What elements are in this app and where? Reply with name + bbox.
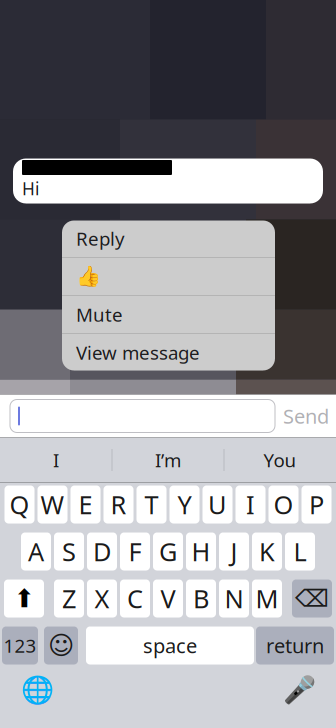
button[interactable]: J [219,532,249,570]
button[interactable]: L [285,532,315,570]
staticText: V [160,582,175,615]
button[interactable]: Y [169,485,199,523]
button[interactable]: D [87,532,117,570]
staticText: K [259,535,275,568]
button[interactable]: Mute [62,296,275,334]
staticText: M [255,582,278,615]
staticText: Mute [76,302,123,327]
button[interactable]: K [252,532,282,570]
button[interactable]: space [86,626,254,664]
staticText: S [62,535,76,568]
staticText: 🎤 [282,674,315,705]
button[interactable]: Emoji [44,626,78,664]
staticText: E [78,488,92,521]
button[interactable]: U [202,485,232,523]
staticText: 🌐 [20,674,53,705]
button[interactable]: X [87,579,117,617]
staticText: L [293,535,306,568]
staticText: Y [177,488,191,521]
staticText: Reply [76,226,125,251]
staticText: 👍 [76,265,101,288]
button[interactable]: O [268,485,298,523]
button[interactable]: P [301,485,331,523]
button[interactable]: A [21,532,51,570]
button[interactable]: S [54,532,84,570]
staticText: P [309,488,324,521]
staticText: ☺ [48,631,74,660]
staticText: D [93,535,111,568]
button[interactable]: R [103,485,133,523]
staticText: B [193,582,209,615]
button[interactable]: G [153,532,183,570]
button[interactable]: B [186,579,216,617]
button[interactable]: Shift [4,579,44,617]
staticText: F [128,535,141,568]
button[interactable]: I’m [112,437,223,482]
staticText: N [224,582,243,615]
staticText: Hi [22,177,39,200]
button[interactable]: 123 [2,626,38,664]
staticText: ⌫ [295,585,329,612]
staticText: I’m [155,448,181,472]
button[interactable]: I [0,437,111,482]
button[interactable]: Dictation [282,672,316,706]
button[interactable]: E [70,485,100,523]
staticText: X [94,582,109,615]
staticText: O [273,488,293,521]
staticText: G [159,535,177,568]
staticText: Z [62,582,76,615]
staticText: J [230,535,237,568]
staticText: You [263,448,296,472]
staticText: A [28,535,44,568]
button[interactable]: You [224,437,335,482]
button[interactable]: M [252,579,282,617]
staticText: ⬆ [13,584,34,613]
button[interactable]: V [153,579,183,617]
staticText: 123 [3,633,36,658]
staticText: I [246,488,255,521]
staticText: View message [76,340,200,365]
staticText: C [127,582,143,615]
staticText: Send [283,403,329,429]
staticText: Q [9,488,29,521]
button[interactable]: W [37,485,67,523]
button[interactable]: Reply [62,220,275,258]
staticText: W [40,488,64,521]
button[interactable]: Q [4,485,34,523]
button[interactable]: Hi [13,158,323,203]
staticText: return [266,632,324,659]
button[interactable]: View message [62,334,275,371]
button[interactable]: H [186,532,216,570]
staticText: U [208,488,227,521]
button[interactable]: Z [54,579,84,617]
button[interactable]: Send [283,403,336,429]
button[interactable]: I [235,485,265,523]
button[interactable]: return [256,626,334,664]
staticText: R [110,488,126,521]
button[interactable]: F [120,532,150,570]
staticText: H [191,535,210,568]
button[interactable]: 👍 [62,258,275,296]
button[interactable]: N [219,579,249,617]
staticText: I [53,448,59,472]
staticText: T [144,488,158,521]
button[interactable]: T [136,485,166,523]
button[interactable]: C [120,579,150,617]
staticText: space [143,632,197,659]
button[interactable] [10,399,275,432]
button[interactable]: Next keyboard [20,672,54,706]
button[interactable]: Delete [292,579,332,617]
